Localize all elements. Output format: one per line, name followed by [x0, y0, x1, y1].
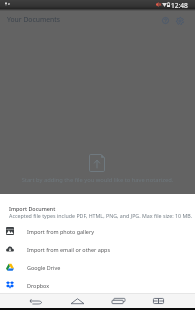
button[interactable]: Import from email or other apps	[0, 240, 195, 258]
button[interactable]: Help	[159, 14, 172, 27]
staticText: Import from email or other apps	[27, 246, 111, 253]
staticText: Start by adding the file you would like …	[0, 176, 195, 184]
staticText: Import from photo gallery	[27, 228, 94, 235]
button[interactable]: Import from photo gallery	[0, 222, 195, 240]
staticText: 12:48	[171, 1, 188, 10]
staticText: Import Document	[9, 205, 56, 212]
staticText: Dropbox	[27, 282, 50, 289]
staticText: Accepted file types include PDF, HTML, P…	[9, 212, 193, 219]
button[interactable]: Home	[70, 294, 84, 308]
button[interactable]: Settings	[173, 14, 186, 27]
button[interactable]: Dropbox	[0, 276, 195, 294]
button[interactable]: Google Drive	[0, 258, 195, 276]
staticText: Google Drive	[27, 264, 61, 271]
button[interactable]: Back	[29, 294, 43, 308]
button[interactable]: Recents	[111, 294, 125, 308]
button[interactable]: Split screen	[151, 294, 165, 308]
staticText: Your Documents	[7, 15, 61, 24]
